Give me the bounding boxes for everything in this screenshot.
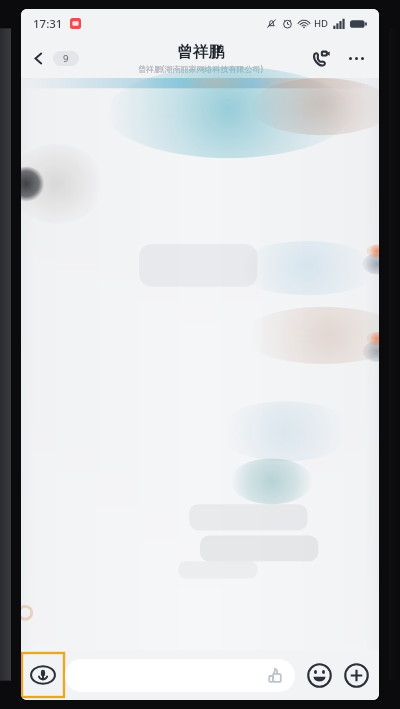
- staticText: HD: [314, 17, 329, 30]
- staticText: 曾祥鹏: [177, 42, 224, 62]
- staticText: 17:31: [33, 16, 63, 32]
- button[interactable]: More options: [339, 41, 373, 75]
- button[interactable]: Video call: [305, 42, 337, 74]
- staticText: 9: [63, 52, 69, 65]
- staticText: 曾祥鹏(湖南丽家网络科技有限公司): [138, 63, 263, 74]
- button[interactable]: Back, 9 unread: [21, 45, 87, 72]
- button[interactable]: Thumbs up: [264, 665, 285, 686]
- button[interactable]: More actions: [337, 656, 375, 694]
- button[interactable]: Emoji: [301, 657, 337, 693]
- button[interactable]: Thumbs up: [65, 659, 295, 692]
- button[interactable]: Voice message: [21, 652, 65, 698]
